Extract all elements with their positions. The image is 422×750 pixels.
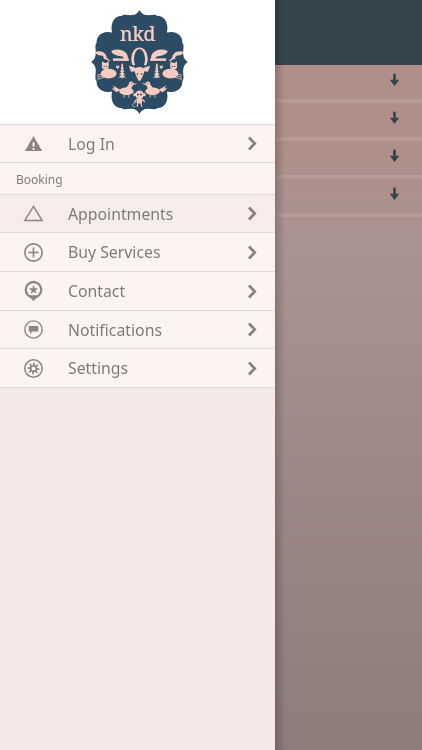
button[interactable]: Buy Services [0,233,275,271]
button[interactable]: Download [0,103,422,137]
staticText: Contact [68,280,126,302]
button[interactable]: Download [0,141,422,175]
staticText: Buy Services [68,241,161,263]
button[interactable]: Notifications [0,311,275,348]
button[interactable]: Settings [0,349,275,387]
staticText: nkd [120,20,156,47]
button[interactable]: Appointments [0,195,275,232]
staticText: Settings [68,357,129,379]
staticText: Log In [68,133,115,155]
button[interactable]: Log In [0,125,275,162]
staticText: Notifications [68,319,162,341]
other: Download [388,73,401,86]
staticText: Appointments [68,203,174,225]
other: Download [388,111,401,124]
button[interactable]: Download [0,179,422,213]
staticText: Booking [16,171,63,187]
other: Download [388,187,401,200]
button[interactable]: Download [0,65,422,99]
other: Download [388,149,401,162]
button[interactable]: Contact [0,272,275,310]
